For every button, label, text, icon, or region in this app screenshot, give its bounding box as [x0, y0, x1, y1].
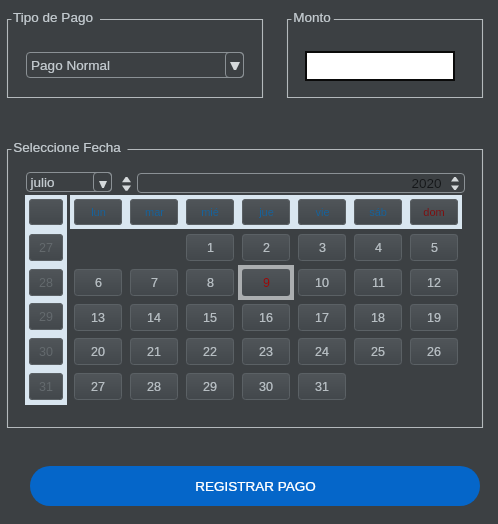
button[interactable]: mié [186, 199, 234, 225]
button[interactable]: 6 [74, 269, 122, 296]
button[interactable]: 20 [74, 338, 122, 365]
button[interactable]: 10 [298, 269, 346, 296]
button[interactable]: 24 [298, 338, 346, 365]
staticText: jue [259, 206, 274, 218]
button[interactable]: 29 [29, 303, 63, 330]
staticText: 19 [427, 311, 441, 325]
staticText: 3 [319, 241, 326, 255]
button[interactable]: 14 [130, 304, 178, 331]
button[interactable]: 15 [186, 304, 234, 331]
staticText: 29 [203, 380, 217, 394]
button[interactable]: 18 [354, 304, 402, 331]
staticText: 6 [95, 276, 102, 290]
button[interactable]: vie [298, 199, 346, 225]
button[interactable]: 30 [29, 338, 63, 365]
staticText: 30 [259, 380, 273, 394]
staticText: 13 [91, 311, 105, 325]
staticText: 22 [203, 345, 217, 359]
button[interactable] [29, 199, 63, 225]
button[interactable]: 22 [186, 338, 234, 365]
button[interactable]: 17 [298, 304, 346, 331]
button[interactable]: 30 [242, 373, 290, 400]
staticText: 1 [207, 241, 214, 255]
staticText: 17 [315, 311, 329, 325]
staticText: 16 [259, 311, 273, 325]
staticText: 15 [203, 311, 217, 325]
button[interactable]: mar [130, 199, 178, 225]
staticText: lun [91, 206, 106, 218]
button[interactable]: 28 [130, 373, 178, 400]
staticText: dom [423, 206, 445, 218]
staticText: 11 [372, 276, 385, 290]
staticText: 30 [39, 345, 53, 359]
button[interactable]: 27 [74, 373, 122, 400]
button[interactable]: 13 [74, 304, 122, 331]
button[interactable]: 31 [298, 373, 346, 400]
button[interactable]: 19 [410, 304, 458, 331]
staticText: 28 [39, 276, 53, 290]
button[interactable]: Pago Normal [26, 52, 244, 78]
staticText: 14 [147, 311, 161, 325]
staticText: 29 [39, 310, 53, 324]
button[interactable]: Cambiar mes [122, 177, 131, 191]
button[interactable]: 4 [354, 234, 402, 261]
button[interactable]: 28 [29, 269, 63, 296]
staticText: 27 [39, 241, 53, 255]
staticText: 27 [91, 380, 105, 394]
button[interactable]: lun [74, 199, 122, 225]
staticText: 12 [427, 276, 441, 290]
button[interactable]: 1 [186, 234, 234, 261]
button[interactable]: 26 [410, 338, 458, 365]
staticText: Monto [293, 10, 331, 25]
staticText: Pago Normal [31, 58, 110, 73]
staticText: 21 [147, 345, 161, 359]
staticText: 8 [207, 276, 214, 290]
button[interactable]: 9 [242, 269, 290, 296]
button[interactable]: 2 [242, 234, 290, 261]
button[interactable]: 3 [298, 234, 346, 261]
staticText: Seleccione Fecha [13, 140, 121, 155]
staticText: 9 [263, 276, 270, 290]
staticText: 18 [371, 311, 385, 325]
staticText: 2020 [411, 176, 442, 191]
button[interactable]: 25 [354, 338, 402, 365]
button[interactable]: 11 [354, 269, 402, 296]
button[interactable]: 23 [242, 338, 290, 365]
staticText: Tipo de Pago [13, 10, 93, 25]
staticText: 4 [375, 241, 382, 255]
button[interactable]: 29 [186, 373, 234, 400]
staticText: 31 [39, 380, 53, 394]
staticText: 10 [315, 276, 329, 290]
button[interactable]: 21 [130, 338, 178, 365]
button[interactable]: jue [242, 199, 290, 225]
staticText: 31 [315, 380, 329, 394]
button[interactable]: 5 [410, 234, 458, 261]
staticText: 5 [431, 241, 438, 255]
button[interactable]: Cambiar año [451, 177, 459, 190]
staticText: 2 [263, 241, 270, 255]
button[interactable]: 2020 [137, 173, 465, 193]
staticText: julio [30, 175, 55, 190]
button[interactable]: 8 [186, 269, 234, 296]
staticText: 26 [427, 345, 441, 359]
button[interactable]: REGISTRAR PAGO [30, 466, 480, 506]
staticText: sáb [369, 206, 387, 218]
button[interactable]: 27 [29, 234, 63, 261]
button[interactable]: 7 [130, 269, 178, 296]
staticText: mié [201, 206, 219, 218]
button[interactable]: 31 [29, 373, 63, 400]
staticText: mar [145, 206, 164, 218]
button[interactable]: dom [410, 199, 458, 225]
staticText: 7 [151, 276, 158, 290]
button[interactable]: 16 [242, 304, 290, 331]
staticText: 28 [147, 380, 161, 394]
staticText: 24 [315, 345, 329, 359]
staticText: 20 [91, 345, 105, 359]
button[interactable]: julio [26, 172, 112, 192]
staticText: 23 [259, 345, 273, 359]
staticText: vie [315, 206, 330, 218]
button[interactable]: 12 [410, 269, 458, 296]
staticText: 25 [371, 345, 385, 359]
button[interactable]: sáb [354, 199, 402, 225]
